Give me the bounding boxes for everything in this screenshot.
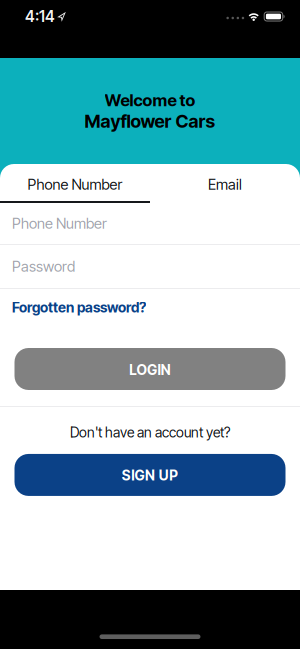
staticText: Welcome to — [104, 90, 195, 110]
staticText: SIGN UP — [122, 467, 178, 484]
staticText: 4:14 — [25, 7, 55, 26]
staticText: Phone Number — [27, 176, 122, 193]
button[interactable]: Password — [0, 245, 300, 288]
button[interactable]: Phone Number — [0, 168, 150, 201]
staticText: Mayflower Cars — [84, 110, 215, 132]
button[interactable]: Phone Number — [0, 203, 300, 244]
button[interactable]: Forgotten password? — [0, 299, 146, 316]
staticText: Don't have an account yet? — [70, 424, 230, 441]
staticText: LOGIN — [129, 361, 171, 378]
staticText: Phone Number — [12, 215, 107, 232]
staticText: Forgotten password? — [12, 299, 146, 316]
button[interactable]: Email — [150, 168, 300, 201]
staticText: Password — [12, 258, 75, 275]
button[interactable]: SIGN UP — [0, 454, 300, 496]
button[interactable]: LOGIN — [0, 348, 300, 390]
staticText: Email — [208, 176, 242, 193]
